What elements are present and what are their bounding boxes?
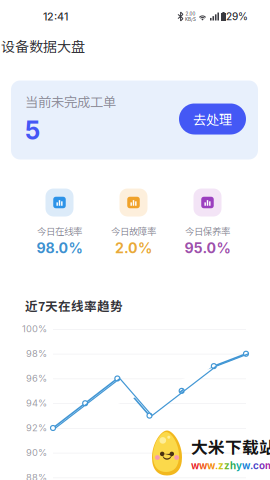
staticText: z <box>224 460 230 472</box>
staticText: m <box>265 460 270 472</box>
staticText: h <box>230 460 236 472</box>
staticText: 100% <box>22 323 47 335</box>
staticText: c <box>253 460 259 472</box>
staticText: 2.0% <box>115 239 152 257</box>
staticText: 近7天在线率趋势 <box>25 296 123 315</box>
staticText: 88% <box>26 472 47 480</box>
staticText: 去处理 <box>193 109 232 129</box>
staticText: z <box>218 460 224 472</box>
staticText: 92% <box>26 422 47 434</box>
staticText: 12:41 <box>43 10 68 23</box>
staticText: w <box>191 460 199 472</box>
staticText: 当前未完成工单 <box>25 91 116 111</box>
staticText: 98% <box>26 348 47 359</box>
staticText: 98.0% <box>36 239 82 257</box>
staticText: 5 <box>25 115 40 145</box>
staticText: 今日保养率 <box>185 224 230 238</box>
staticText: . <box>250 460 253 472</box>
staticText: w <box>242 460 250 472</box>
staticText: 今日故障率 <box>111 224 156 238</box>
staticText: KB/S <box>185 16 196 22</box>
button[interactable]: 去处理 <box>179 103 246 134</box>
staticText: . <box>215 460 218 472</box>
staticText: w <box>199 460 207 472</box>
staticText: 大米下载站 <box>191 434 270 459</box>
staticText: w <box>207 460 215 472</box>
staticText: 96% <box>26 373 47 384</box>
staticText: 设备数据大盘 <box>1 35 85 56</box>
staticText: 95.0% <box>184 239 230 257</box>
staticText: 90% <box>26 447 47 458</box>
staticText: 94% <box>26 398 47 409</box>
staticText: o <box>259 460 265 472</box>
staticText: 29% <box>226 10 248 23</box>
staticText: 今日在线率 <box>37 224 82 238</box>
staticText: y <box>236 460 242 472</box>
staticText: 2.00 <box>185 11 195 16</box>
